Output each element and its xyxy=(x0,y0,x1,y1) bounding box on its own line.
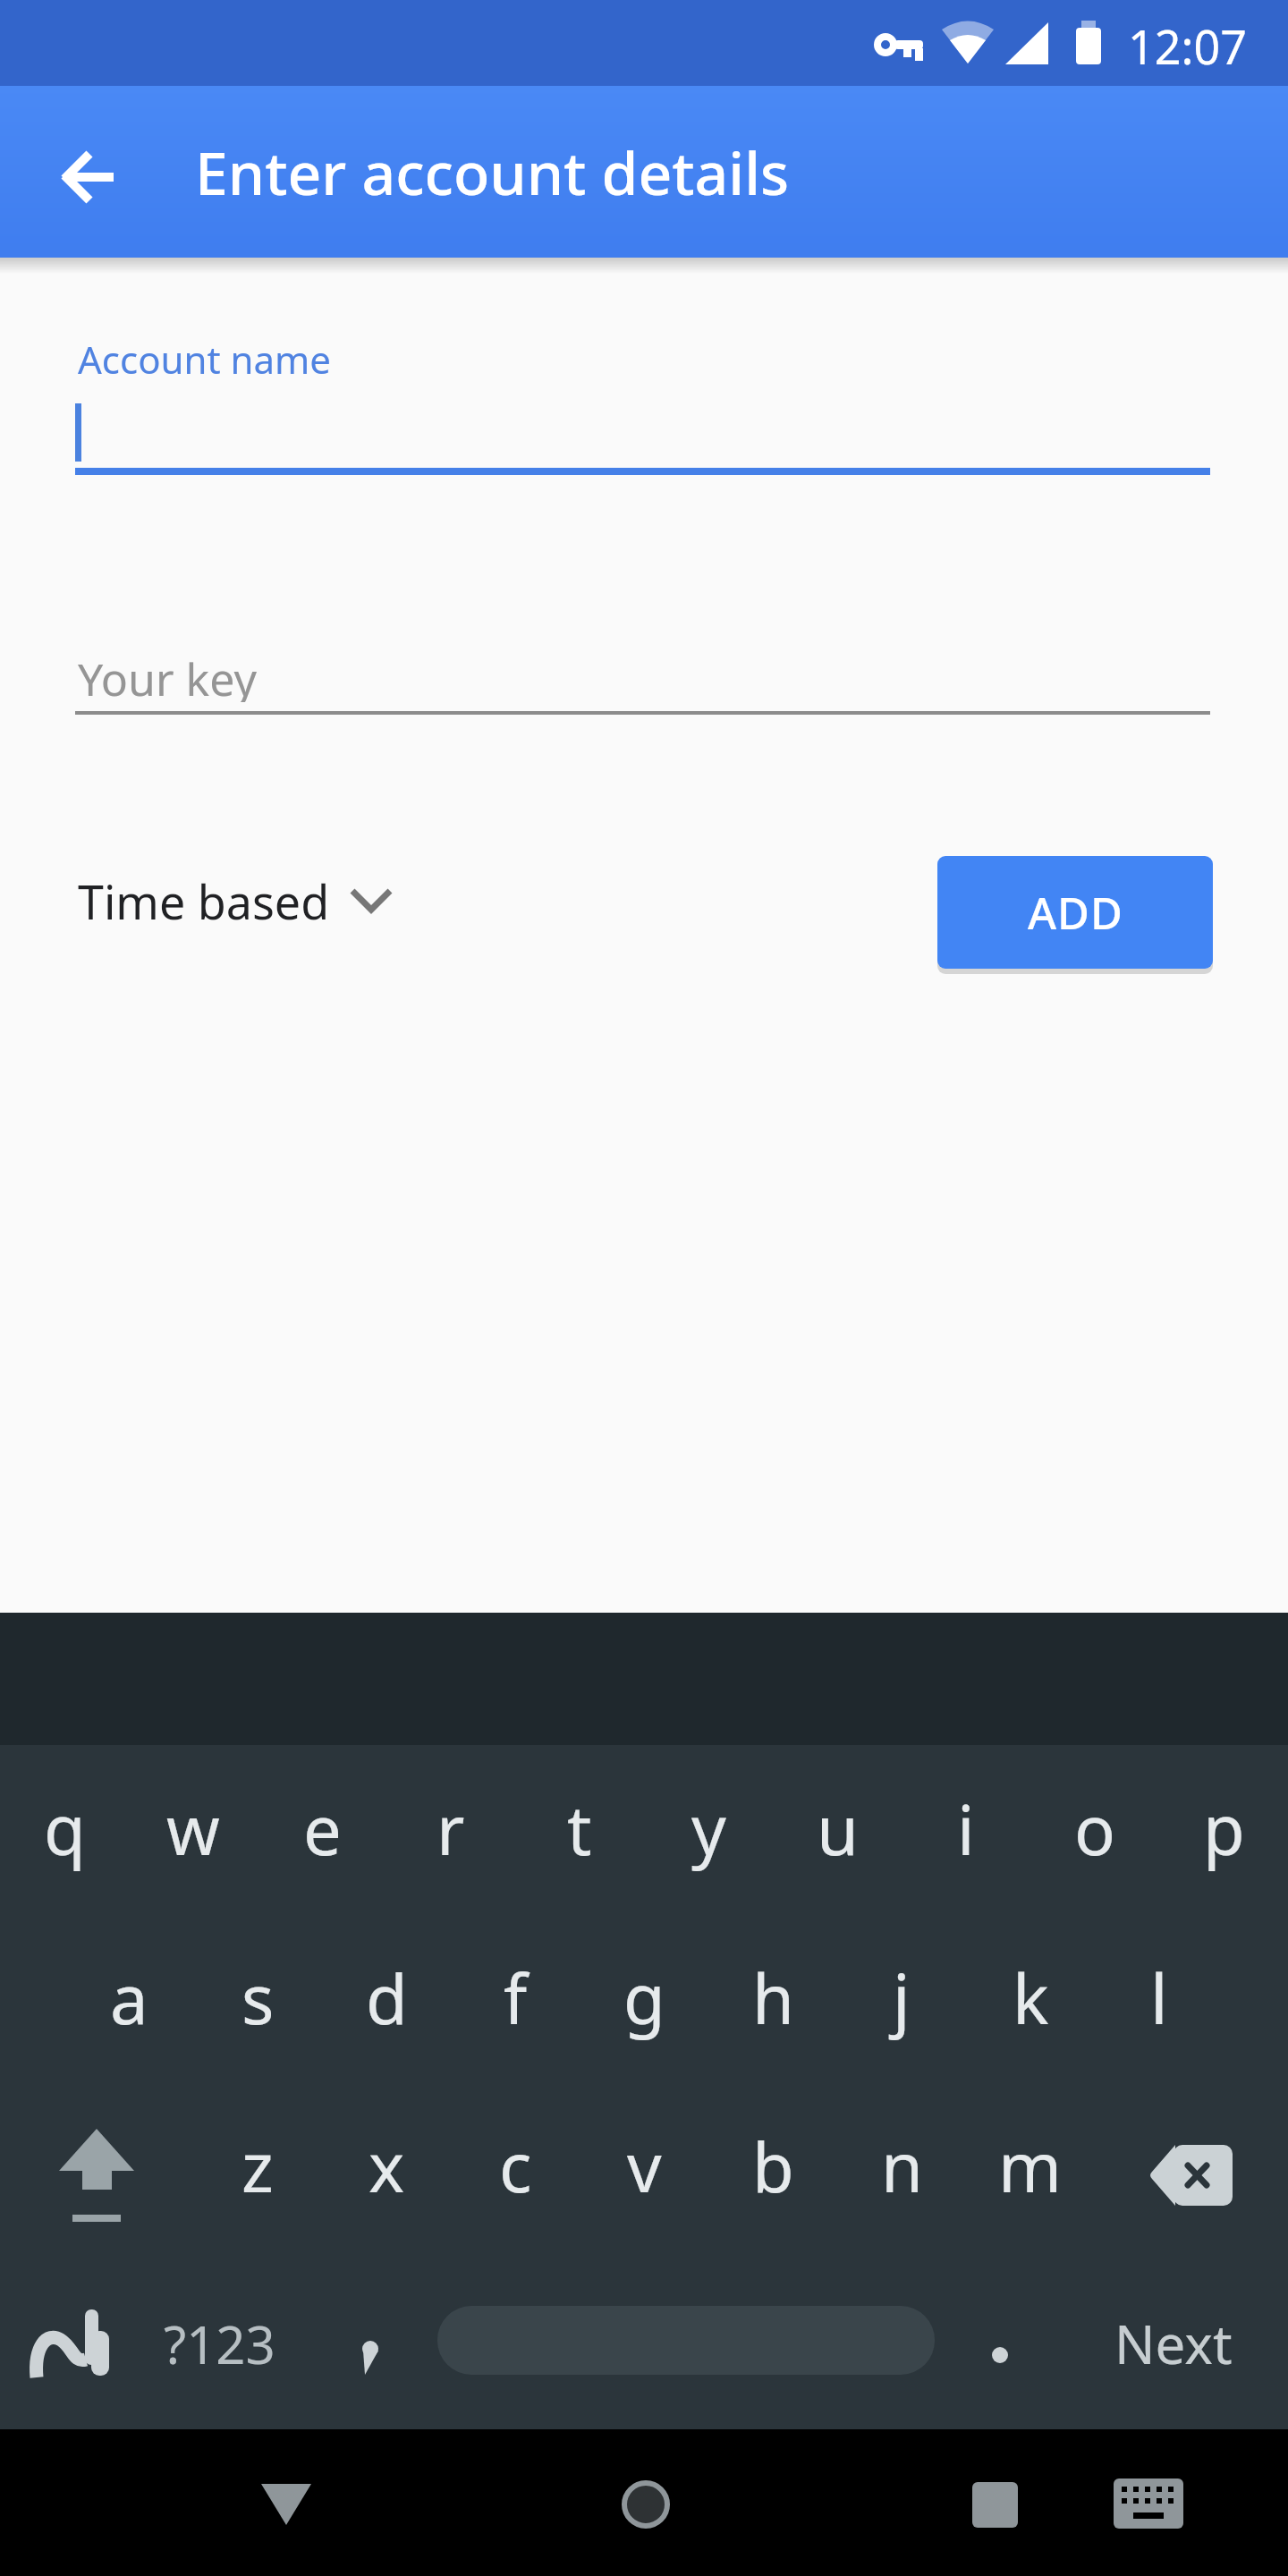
button[interactable]: o xyxy=(1030,1745,1159,1912)
button[interactable]: u xyxy=(773,1745,902,1912)
button[interactable]: z xyxy=(193,2082,322,2250)
button[interactable] xyxy=(21,2091,172,2258)
button[interactable] xyxy=(1093,2453,1204,2555)
button[interactable]: y xyxy=(644,1745,773,1912)
staticText: k xyxy=(1013,1952,1049,2045)
button[interactable]: l xyxy=(1095,1914,1224,2081)
staticText: ?123 xyxy=(164,2309,275,2379)
button[interactable] xyxy=(583,2451,708,2558)
staticText: ADD xyxy=(1028,883,1123,943)
staticText: z xyxy=(241,2120,274,2213)
staticText: p xyxy=(1203,1783,1245,1876)
staticText: n xyxy=(881,2120,923,2213)
button[interactable]: x xyxy=(322,2082,451,2250)
button[interactable]: a xyxy=(64,1914,193,2081)
button[interactable]: b xyxy=(708,2082,837,2250)
button[interactable] xyxy=(943,2290,1057,2397)
staticText: c xyxy=(499,2120,532,2213)
staticText: Time based xyxy=(78,869,330,933)
button[interactable]: i xyxy=(902,1745,1030,1912)
button[interactable]: k xyxy=(966,1914,1095,2081)
staticText: y xyxy=(691,1783,726,1876)
staticText: f xyxy=(504,1952,528,2045)
staticText: u xyxy=(817,1783,859,1876)
staticText: 12:07 xyxy=(1128,14,1247,73)
staticText: w xyxy=(166,1783,220,1876)
staticText: e xyxy=(303,1783,342,1876)
button[interactable]: Next xyxy=(1100,2290,1247,2397)
button[interactable]: d xyxy=(322,1914,451,2081)
staticText: m xyxy=(998,2120,1063,2213)
button[interactable] xyxy=(11,2276,136,2411)
staticText: t xyxy=(567,1783,592,1876)
button[interactable]: h xyxy=(708,1914,837,2081)
staticText: Account name xyxy=(78,334,332,385)
button[interactable]: t xyxy=(515,1745,644,1912)
staticText: Enter account details xyxy=(195,131,790,212)
staticText: s xyxy=(241,1952,275,2045)
button[interactable]: m xyxy=(966,2082,1095,2250)
button[interactable] xyxy=(54,385,1234,483)
staticText: l xyxy=(1150,1952,1168,2045)
button[interactable]: j xyxy=(837,1914,966,2081)
staticText: o xyxy=(1074,1783,1115,1876)
button[interactable]: ADD xyxy=(937,856,1213,969)
staticText: r xyxy=(436,1783,465,1876)
button[interactable]: p xyxy=(1159,1745,1288,1912)
staticText: h xyxy=(752,1952,794,2045)
staticText: a xyxy=(110,1952,148,2045)
button[interactable]: g xyxy=(580,1914,708,2081)
staticText: j xyxy=(893,1952,911,2045)
button[interactable]: v xyxy=(580,2082,708,2250)
button[interactable] xyxy=(36,123,143,231)
staticText: q xyxy=(44,1783,86,1876)
staticText: b xyxy=(752,2120,794,2213)
button[interactable]: q xyxy=(0,1745,129,1912)
button[interactable] xyxy=(1116,2091,1267,2258)
staticText: Next xyxy=(1114,2307,1233,2380)
button[interactable]: e xyxy=(258,1745,386,1912)
staticText: d xyxy=(366,1952,408,2045)
button[interactable] xyxy=(932,2451,1057,2558)
staticText: i xyxy=(957,1783,975,1876)
staticText: Your key xyxy=(78,648,257,702)
button[interactable]: ?123 xyxy=(157,2290,282,2397)
staticText: g xyxy=(623,1952,665,2045)
button[interactable]: s xyxy=(193,1914,322,2081)
staticText: x xyxy=(369,2120,405,2213)
staticText: v xyxy=(627,2120,662,2213)
button[interactable]: f xyxy=(451,1914,580,2081)
button[interactable] xyxy=(313,2290,428,2397)
button[interactable]: r xyxy=(386,1745,515,1912)
button[interactable]: c xyxy=(451,2082,580,2250)
button[interactable]: w xyxy=(129,1745,258,1912)
button[interactable]: Time based xyxy=(54,843,411,959)
button[interactable] xyxy=(224,2451,349,2558)
button[interactable]: n xyxy=(837,2082,966,2250)
button[interactable] xyxy=(54,626,1234,724)
